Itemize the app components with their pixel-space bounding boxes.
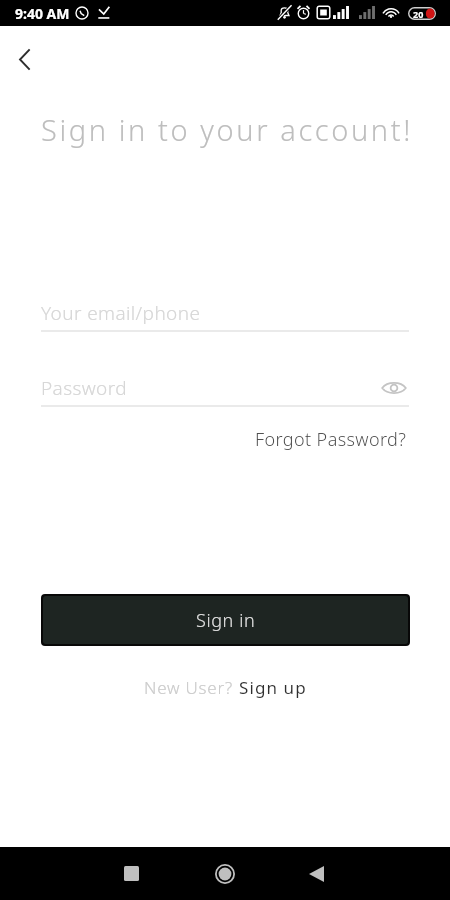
staticText: Your email/phone — [41, 300, 201, 326]
staticText: 20 — [413, 8, 424, 20]
button[interactable]: Your email/phone — [41, 300, 409, 332]
button[interactable]: Back — [293, 850, 340, 897]
button[interactable]: Show password — [372, 366, 415, 409]
button[interactable]: Sign up — [239, 676, 307, 699]
staticText: Forgot Password? — [255, 427, 407, 452]
staticText: Sign in to your account! — [41, 110, 413, 149]
button[interactable]: Password — [41, 375, 409, 407]
staticText: 9:40 AM — [15, 4, 70, 23]
button[interactable]: Home — [201, 850, 248, 897]
staticText: Sign up — [239, 676, 307, 699]
button[interactable]: Sign in — [43, 596, 408, 644]
staticText: New User? — [144, 676, 239, 699]
button[interactable]: Back — [2, 37, 46, 81]
button[interactable]: Recents — [108, 850, 155, 897]
button[interactable]: Forgot Password? — [253, 427, 409, 452]
staticText: Sign in — [196, 608, 256, 633]
staticText: Password — [41, 375, 128, 401]
